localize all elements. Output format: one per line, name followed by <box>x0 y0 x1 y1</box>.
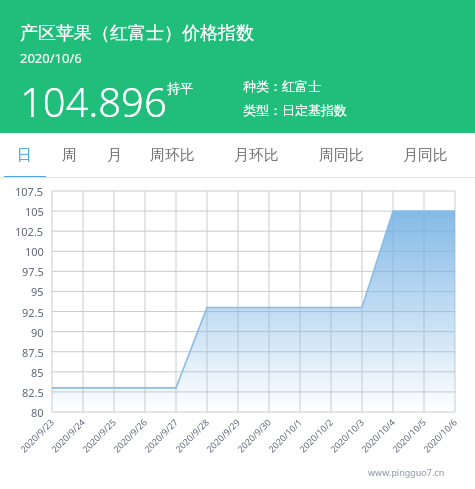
button[interactable]: 日 <box>9 133 39 178</box>
button[interactable]: 周同比 <box>313 133 369 178</box>
button[interactable]: 月同比 <box>397 133 453 178</box>
staticText: 月同比 <box>403 146 448 165</box>
staticText: 种类：红富士 <box>243 78 321 94</box>
staticText: 月 <box>107 146 122 165</box>
button[interactable]: 周环比 <box>144 133 200 178</box>
button[interactable]: 月 <box>99 133 129 178</box>
staticText: 2020/10/6 <box>20 49 82 67</box>
staticText: 周 <box>62 146 77 165</box>
staticText: 日 <box>17 146 32 165</box>
staticText: 持平 <box>167 80 193 96</box>
button[interactable]: 月环比 <box>228 133 284 178</box>
button[interactable]: 周 <box>54 133 84 178</box>
staticText: 周同比 <box>319 146 364 165</box>
staticText: 产区苹果（红富士）价格指数 <box>20 22 254 45</box>
staticText: 月环比 <box>234 146 279 165</box>
staticText: 周环比 <box>150 146 195 165</box>
staticText: 104.896 <box>20 74 167 128</box>
staticText: 类型：日定基指数 <box>243 102 347 118</box>
